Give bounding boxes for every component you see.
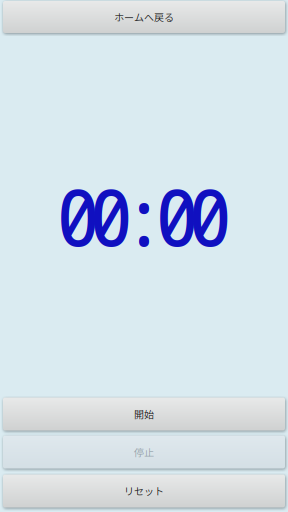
staticText: ホームへ戻る (114, 10, 174, 24)
staticText: 開始 (134, 407, 154, 421)
button[interactable]: 開始 (3, 397, 285, 430)
staticText: 0 (189, 163, 230, 269)
button[interactable]: ホームへ戻る (3, 1, 285, 33)
button[interactable]: 停止 (3, 435, 285, 468)
staticText: : (123, 163, 164, 269)
staticText: 0 (57, 163, 98, 269)
button[interactable]: リセット (3, 474, 285, 507)
staticText: リセット (124, 484, 164, 498)
staticText: 0 (156, 163, 197, 269)
staticText: 停止 (134, 445, 154, 459)
staticText: 0 (90, 163, 131, 269)
